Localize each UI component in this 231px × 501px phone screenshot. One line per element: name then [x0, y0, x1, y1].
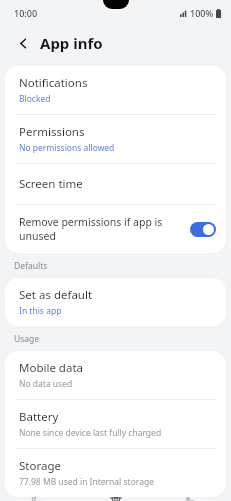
button[interactable]: Remove permissions if app is unused	[5, 205, 226, 253]
button[interactable]: Force stop	[154, 497, 231, 501]
staticText: Blocked	[19, 93, 51, 105]
staticText: Storage	[19, 458, 61, 474]
staticText: Mobile data	[19, 360, 83, 376]
button[interactable]: Mobile data	[5, 351, 226, 399]
other: Uninstall	[109, 497, 123, 501]
button[interactable]: Uninstall	[77, 497, 154, 501]
staticText: 10:00	[14, 7, 38, 19]
staticText: Defaults	[14, 260, 48, 272]
staticText: No permissions allowed	[19, 142, 115, 154]
staticText: 100%	[190, 7, 214, 19]
staticText: Remove permissions if app is unused	[19, 215, 184, 243]
button[interactable]: Back	[12, 32, 34, 54]
button[interactable]: Battery	[5, 400, 226, 448]
staticText: App info	[40, 33, 103, 53]
button[interactable]: Open	[0, 497, 77, 501]
button[interactable]: Storage	[5, 449, 226, 497]
button[interactable]: Notifications	[5, 66, 226, 114]
staticText: No data used	[19, 378, 73, 390]
button[interactable]: Screen time	[5, 164, 226, 204]
staticText: 77.98 MB used in Internal storage	[19, 476, 154, 488]
staticText: Permissions	[19, 124, 85, 140]
other: Open	[32, 497, 46, 501]
staticText: Notifications	[19, 75, 88, 91]
button[interactable]: Set as default	[5, 278, 226, 326]
staticText: Usage	[14, 333, 40, 345]
staticText: None since device last fully charged	[19, 427, 162, 439]
staticText: Battery	[19, 409, 59, 425]
other: Force stop	[186, 497, 200, 501]
staticText: In this app	[19, 305, 62, 317]
staticText: Screen time	[19, 176, 83, 192]
staticText: Set as default	[19, 287, 93, 303]
button[interactable]: Permissions	[5, 115, 226, 163]
